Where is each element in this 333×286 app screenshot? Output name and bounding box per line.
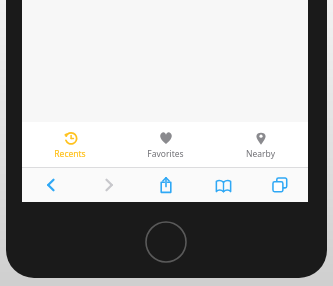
button[interactable]: Forward [80, 168, 137, 202]
button[interactable]: Favorites [118, 122, 213, 167]
button[interactable]: Back [22, 168, 80, 202]
button[interactable]: Recents [22, 122, 118, 167]
button[interactable]: Share [137, 168, 194, 202]
staticText: Recents [54, 148, 86, 160]
staticText: Nearby [246, 148, 275, 160]
button[interactable]: Nearby [213, 122, 308, 167]
staticText: Favorites [147, 148, 184, 160]
button[interactable]: Bookmarks [194, 168, 251, 202]
button[interactable]: Home [145, 221, 187, 263]
button[interactable]: Tabs [251, 168, 308, 202]
